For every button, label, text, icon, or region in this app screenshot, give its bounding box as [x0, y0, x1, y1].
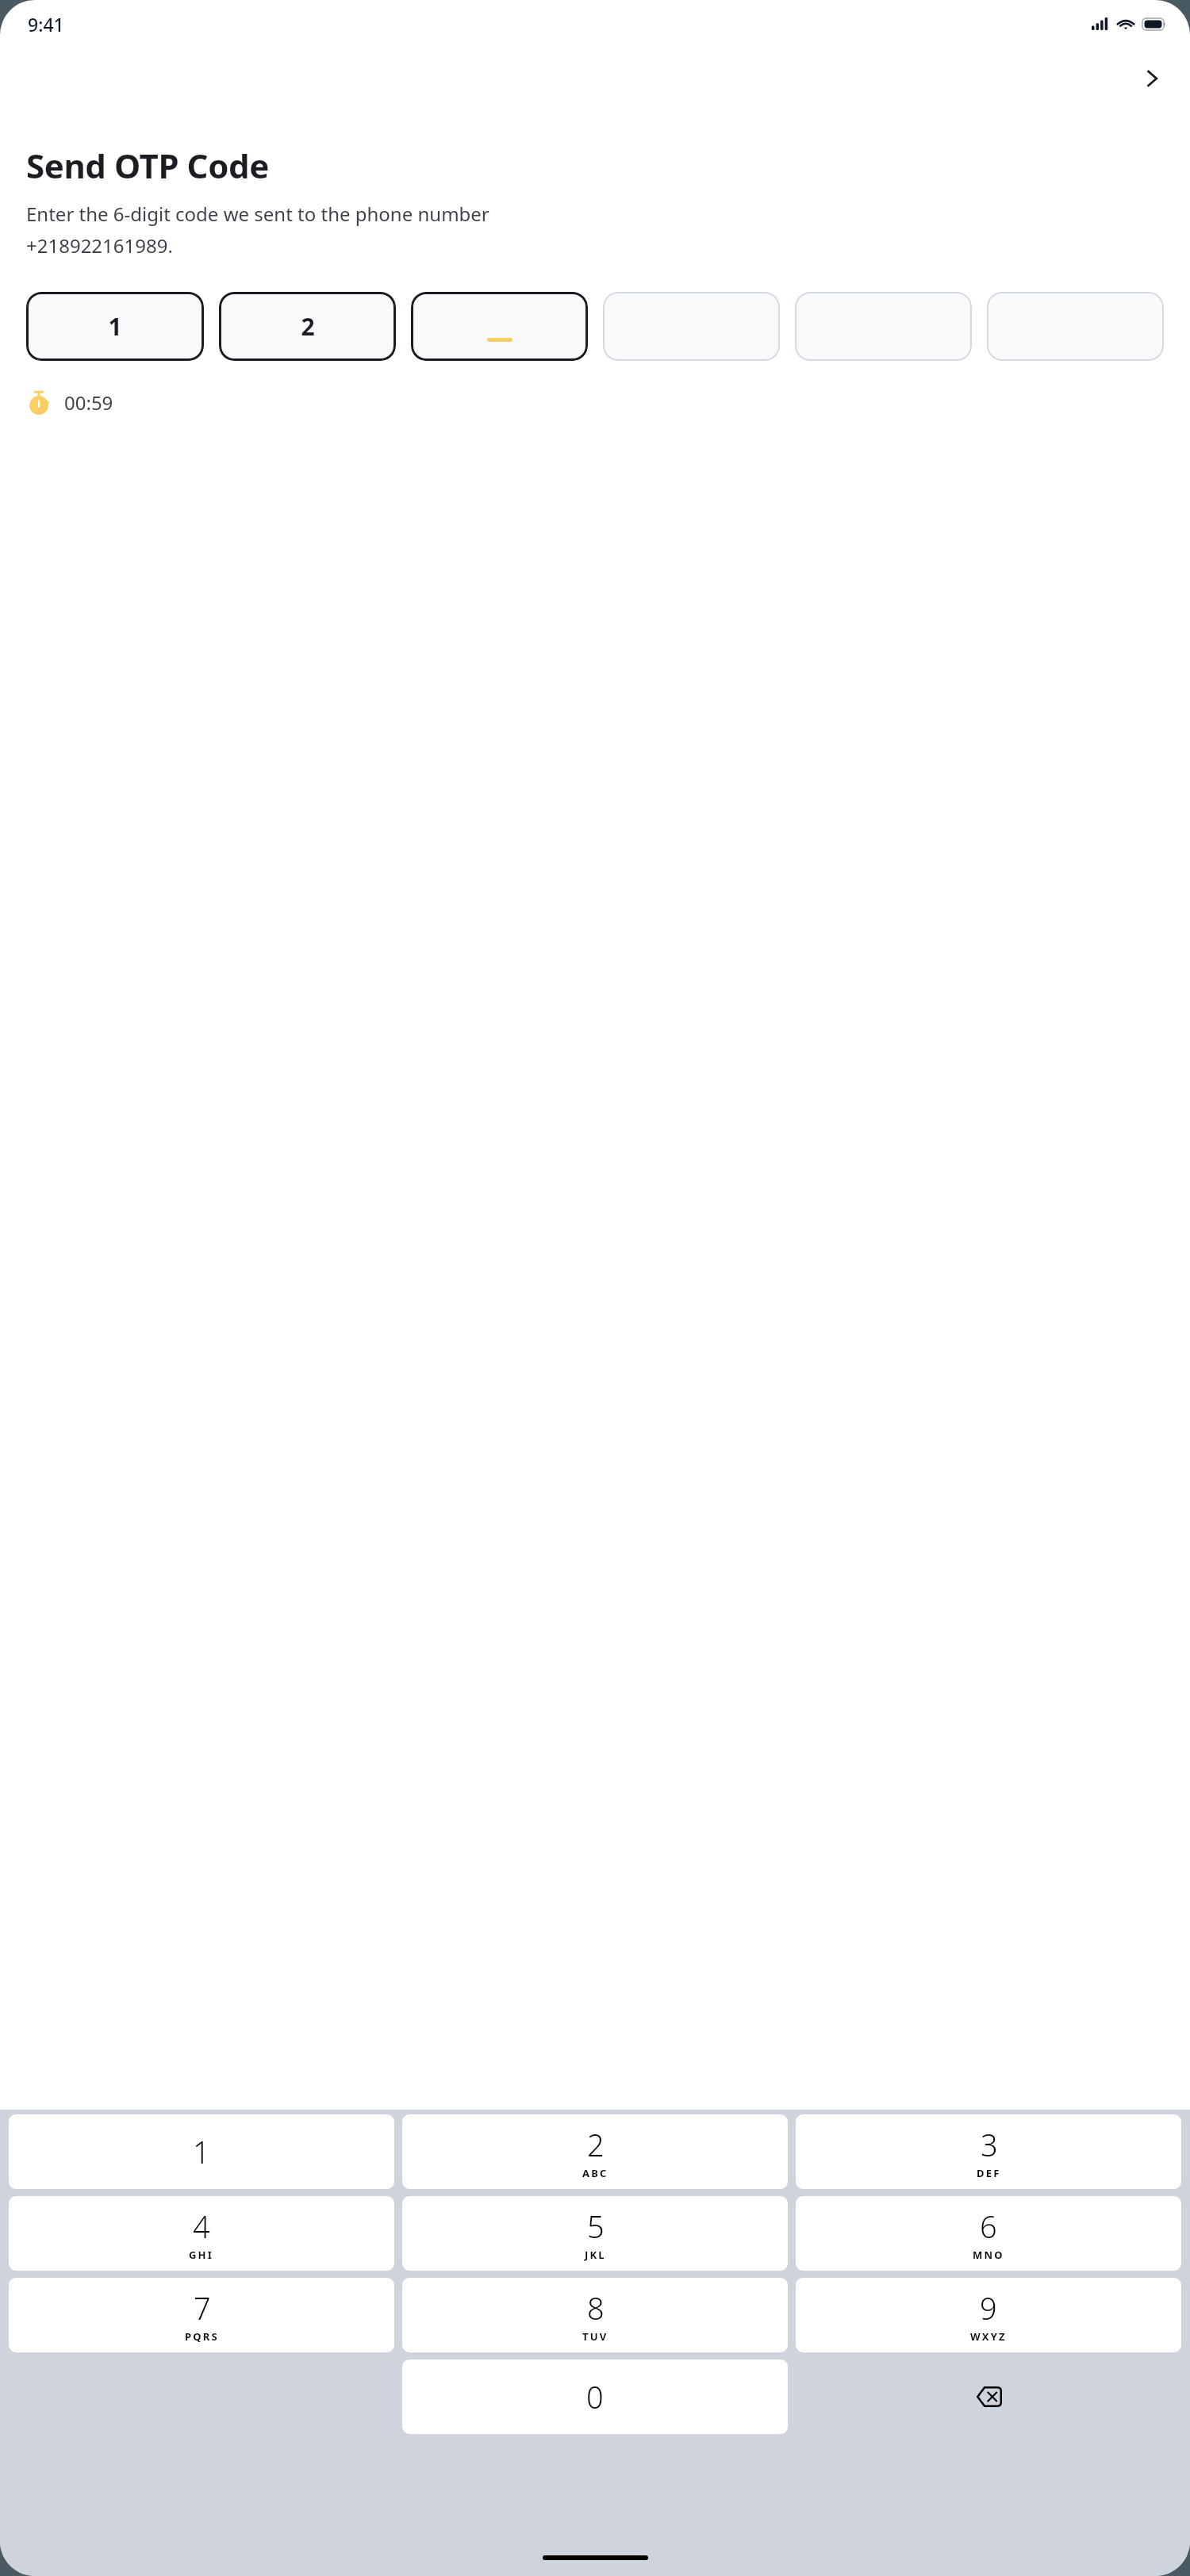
- button[interactable]: 0: [402, 2359, 788, 2434]
- button[interactable]: OTP digit field: [603, 292, 780, 361]
- staticText: 9: [980, 2287, 997, 2329]
- staticText: Send OTP Code: [26, 143, 269, 188]
- button[interactable]: 1: [9, 2114, 394, 2189]
- button[interactable]: 00:59: [26, 389, 113, 416]
- staticText: 2: [587, 2124, 605, 2165]
- staticText: JKL: [585, 2248, 606, 2262]
- staticText: 1: [108, 310, 122, 343]
- staticText: TUV: [582, 2329, 608, 2344]
- staticText: Enter the 6-digit code we sent to the ph…: [26, 201, 489, 259]
- button[interactable]: 8: [402, 2278, 788, 2352]
- staticText: 00:59: [64, 389, 113, 416]
- staticText: 5: [587, 2206, 605, 2247]
- staticText: WXYZ: [970, 2329, 1007, 2344]
- button[interactable]: Backspace: [796, 2359, 1181, 2434]
- staticText: 9:41: [28, 12, 64, 36]
- staticText: 1: [193, 2131, 210, 2172]
- button[interactable]: OTP digit field: [987, 292, 1164, 361]
- button[interactable]: 4: [9, 2196, 394, 2271]
- staticText: 2: [301, 310, 315, 343]
- button[interactable]: OTP digit field: [219, 292, 396, 361]
- staticText: 4: [193, 2206, 210, 2247]
- staticText: MNO: [973, 2248, 1004, 2262]
- staticText: PQRS: [185, 2329, 219, 2344]
- button[interactable]: 2: [402, 2114, 788, 2189]
- staticText: 0: [586, 2376, 604, 2417]
- button[interactable]: 7: [9, 2278, 394, 2352]
- button[interactable]: OTP digit field: [26, 292, 204, 361]
- staticText: 8: [587, 2287, 605, 2329]
- button[interactable]: 9: [796, 2278, 1181, 2352]
- button[interactable]: 5: [402, 2196, 788, 2271]
- button[interactable]: Next: [1131, 58, 1173, 99]
- staticText: 6: [980, 2206, 997, 2247]
- button[interactable]: OTP digit field: [411, 292, 588, 361]
- staticText: GHI: [189, 2248, 214, 2262]
- button[interactable]: OTP digit field: [795, 292, 972, 361]
- staticText: 3: [981, 2124, 998, 2165]
- staticText: DEF: [977, 2166, 1001, 2180]
- staticText: ABC: [582, 2166, 608, 2180]
- button[interactable]: 6: [796, 2196, 1181, 2271]
- button[interactable]: 3: [796, 2114, 1181, 2189]
- staticText: 7: [194, 2287, 211, 2329]
